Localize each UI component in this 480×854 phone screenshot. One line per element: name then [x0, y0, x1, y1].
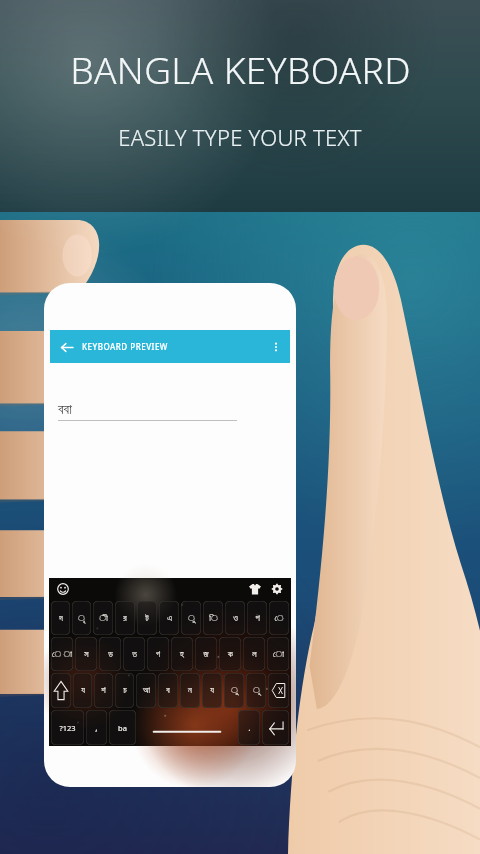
button[interactable]: ?123: [51, 710, 84, 745]
button[interactable]: Emoji: [55, 581, 71, 597]
button[interactable]: ল: [243, 637, 265, 671]
button[interactable]: Shift: [51, 673, 71, 708]
staticText: র: [123, 614, 127, 623]
button[interactable]: য: [202, 673, 222, 708]
staticText: ড: [108, 650, 113, 659]
staticText: প: [255, 614, 260, 623]
button[interactable]: ক: [219, 637, 241, 671]
button[interactable]: আ: [136, 673, 156, 708]
button[interactable]: ে: [269, 601, 289, 635]
staticText: য: [81, 686, 85, 695]
button[interactable]: র: [115, 601, 135, 635]
staticText: BANGLA KEYBOARD: [70, 44, 411, 94]
button[interactable]: এ: [159, 601, 179, 635]
button[interactable]: ু: [181, 601, 201, 635]
button[interactable]: স: [75, 637, 97, 671]
button[interactable]: দ: [51, 601, 70, 635]
button[interactable]: Back: [57, 338, 75, 356]
button[interactable]: ৃ: [72, 601, 91, 635]
button[interactable]: ও: [225, 601, 245, 635]
button[interactable]: More options: [268, 339, 284, 355]
button[interactable]: ন: [180, 673, 200, 708]
staticText: হ: [180, 650, 184, 659]
staticText: KEYBOARD PREVIEW: [82, 341, 168, 352]
staticText: ও: [233, 614, 238, 623]
staticText: ে: [274, 614, 284, 623]
staticText: ক: [228, 650, 233, 659]
button[interactable]: য: [73, 673, 92, 708]
button[interactable]: Backspace: [268, 673, 289, 708]
button[interactable]: শ: [94, 673, 113, 708]
button[interactable]: ববা: [58, 403, 282, 421]
button[interactable]: ো: [267, 637, 289, 671]
staticText: এ: [167, 614, 172, 623]
button[interactable]: ,: [86, 710, 107, 745]
staticText: আ: [143, 686, 150, 695]
button[interactable]: প: [247, 601, 267, 635]
button[interactable]: Enter: [262, 710, 289, 745]
staticText: EASILY TYPE YOUR TEXT: [118, 122, 362, 152]
staticText: ু: [188, 614, 195, 623]
button[interactable]: ত: [123, 637, 145, 671]
staticText: জ: [203, 650, 209, 659]
staticText: দ: [59, 614, 63, 623]
staticText: ট: [145, 614, 149, 623]
staticText: গ: [156, 650, 160, 659]
button[interactable]: ু: [224, 673, 244, 708]
staticText: শ: [101, 686, 106, 695]
button[interactable]: হ: [171, 637, 193, 671]
button[interactable]: গ: [147, 637, 169, 671]
button[interactable]: ট: [137, 601, 157, 635]
staticText: স: [84, 650, 89, 659]
button[interactable]: Theme: [247, 581, 263, 597]
button[interactable]: ে া: [51, 637, 73, 671]
staticText: ৃ: [78, 614, 85, 623]
button[interactable]: ব: [158, 673, 178, 708]
button[interactable]: জ: [195, 637, 217, 671]
staticText: ববা: [58, 403, 72, 417]
staticText: ী: [99, 614, 108, 623]
button[interactable]: ba: [109, 710, 136, 745]
staticText: .: [248, 722, 251, 734]
staticText: ত: [132, 650, 137, 659]
button[interactable]: Space: [138, 710, 236, 745]
staticText: ?123: [59, 723, 76, 733]
staticText: ,: [95, 722, 98, 734]
staticText: ি: [209, 614, 218, 623]
staticText: ে া: [52, 650, 72, 659]
staticText: ba: [118, 723, 127, 733]
staticText: ো: [273, 650, 284, 659]
staticText: ব: [166, 686, 170, 695]
button[interactable]: ড: [99, 637, 121, 671]
staticText: ু: [231, 686, 238, 695]
staticText: ল: [252, 650, 257, 659]
staticText: ন: [188, 686, 192, 695]
button[interactable]: Settings: [269, 581, 285, 597]
staticText: ূ: [253, 686, 260, 695]
button[interactable]: ী: [93, 601, 113, 635]
button[interactable]: চ: [115, 673, 134, 708]
button[interactable]: ি: [203, 601, 223, 635]
button[interactable]: ূ: [246, 673, 266, 708]
staticText: য: [210, 686, 214, 695]
staticText: চ: [123, 686, 127, 695]
button[interactable]: .: [238, 710, 260, 745]
